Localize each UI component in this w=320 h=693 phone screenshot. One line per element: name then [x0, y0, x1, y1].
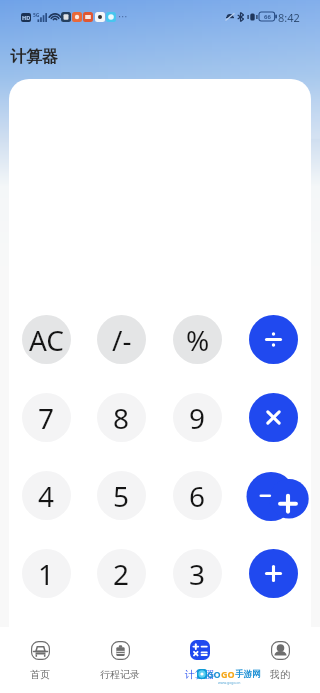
- staticText: 7: [38, 399, 55, 437]
- button[interactable]: 我的: [240, 640, 320, 693]
- button[interactable]: 9: [173, 393, 222, 442]
- button[interactable]: div: [249, 315, 298, 364]
- button[interactable]: 1: [22, 549, 71, 598]
- button[interactable]: 3: [173, 549, 222, 598]
- staticText: GO: [207, 668, 221, 680]
- button[interactable]: AC: [22, 315, 71, 364]
- button[interactable]: 首页: [0, 640, 80, 693]
- staticText: 3: [189, 555, 206, 593]
- button[interactable]: plus: [249, 549, 298, 598]
- staticText: ⋯: [118, 11, 128, 23]
- staticText: 8:42: [278, 10, 300, 25]
- staticText: 9: [189, 399, 206, 437]
- staticText: 8: [113, 399, 130, 437]
- staticText: 2: [113, 555, 130, 593]
- staticText: 5: [113, 477, 130, 515]
- staticText: 4: [38, 477, 55, 515]
- button[interactable]: 7: [22, 393, 71, 442]
- staticText: 我的: [270, 668, 290, 681]
- staticText: 手游网: [235, 669, 261, 680]
- staticText: www.gogo.cn: [218, 680, 241, 685]
- staticText: 计算器: [185, 668, 215, 681]
- staticText: 5G: [33, 12, 40, 19]
- button[interactable]: 6: [173, 471, 222, 520]
- button[interactable]: %: [173, 315, 222, 364]
- staticText: GO: [221, 668, 235, 680]
- button[interactable]: times: [249, 393, 298, 442]
- button[interactable]: 8: [97, 393, 146, 442]
- staticText: HD: [22, 14, 31, 21]
- staticText: 行程记录: [100, 668, 140, 681]
- button[interactable]: 2: [97, 549, 146, 598]
- button[interactable]: 4: [22, 471, 71, 520]
- button[interactable]: 5: [97, 471, 146, 520]
- staticText: 首页: [30, 668, 50, 681]
- button[interactable]: 行程记录: [80, 640, 160, 693]
- staticText: 66: [264, 13, 271, 21]
- button[interactable]: /-: [97, 315, 146, 364]
- staticText: %: [186, 321, 210, 359]
- staticText: 1: [38, 555, 55, 593]
- button[interactable]: 计算器: [160, 640, 240, 693]
- staticText: AC: [29, 321, 65, 359]
- button[interactable]: minus: [249, 471, 298, 520]
- staticText: 计算器: [10, 47, 58, 67]
- staticText: 6: [189, 477, 206, 515]
- staticText: /-: [112, 321, 132, 359]
